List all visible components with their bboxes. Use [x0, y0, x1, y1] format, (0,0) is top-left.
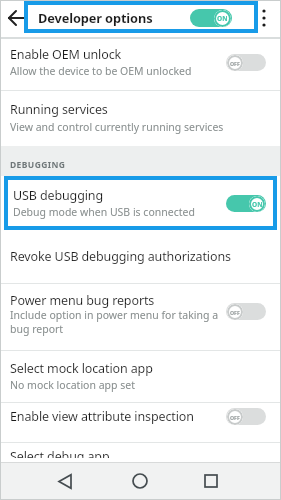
button[interactable]: OFF — [226, 408, 266, 425]
staticText: View and control currently running servi… — [10, 120, 224, 134]
button[interactable]: OFF — [226, 54, 266, 71]
staticText: OFF — [230, 414, 240, 421]
staticText: ON — [217, 14, 228, 23]
staticText: Enable OEM unlock — [10, 46, 122, 63]
staticText: Select debug app — [10, 448, 110, 465]
staticText: Revoke USB debugging authorizations — [10, 248, 231, 265]
button[interactable]: ON — [190, 9, 232, 27]
button[interactable] — [196, 462, 226, 500]
staticText: Enable view attribute inspection — [10, 408, 194, 425]
button[interactable] — [8, 9, 26, 27]
staticText: Allow the device to be OEM unlocked — [10, 64, 192, 78]
staticText: Developer options — [38, 9, 153, 26]
button[interactable] — [0, 38, 281, 90]
staticText: No mock location app set — [10, 378, 135, 392]
staticText: Power menu bug reports — [10, 292, 155, 309]
staticText: ON — [252, 200, 263, 209]
staticText: Debug mode when USB is connected — [13, 205, 195, 219]
button[interactable] — [4, 176, 277, 230]
staticText: DEBUGGING — [10, 159, 66, 171]
button[interactable] — [0, 351, 281, 402]
staticText: OFF — [230, 60, 240, 67]
button[interactable] — [0, 284, 281, 350]
staticText: Running services — [10, 101, 108, 118]
button[interactable]: ON — [226, 195, 266, 212]
staticText: USB debugging — [13, 187, 103, 204]
staticText: Include option in power menu for taking … — [10, 308, 219, 322]
button[interactable] — [0, 91, 281, 146]
button[interactable] — [0, 231, 281, 283]
button[interactable]: OFF — [226, 303, 266, 320]
button[interactable] — [261, 8, 267, 28]
staticText: OFF — [230, 309, 240, 316]
staticText: Select mock location app — [10, 360, 153, 377]
staticText: bug report — [10, 322, 64, 336]
button[interactable] — [125, 462, 155, 500]
button[interactable] — [50, 462, 80, 500]
button[interactable] — [0, 403, 281, 439]
